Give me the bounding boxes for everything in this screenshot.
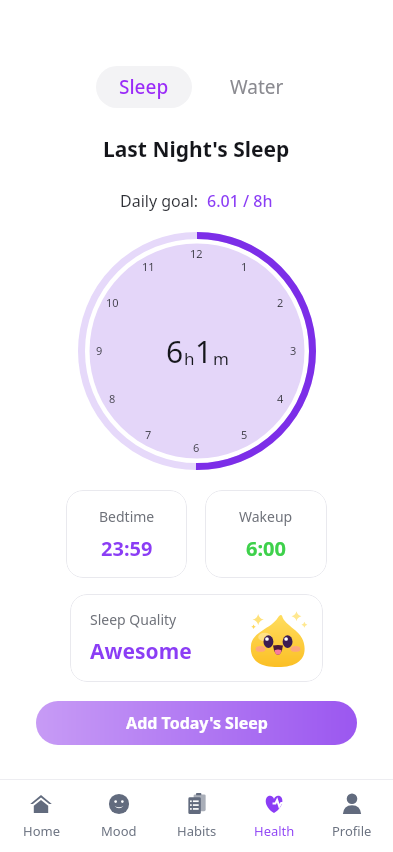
button[interactable]: Add Today's Sleep — [36, 701, 357, 745]
staticText: 8 — [109, 391, 116, 406]
staticText: Home — [23, 822, 60, 840]
staticText: 6 — [166, 331, 184, 372]
staticText: 1 — [241, 259, 248, 274]
staticText: 11 — [142, 259, 155, 274]
staticText: 6:00 — [246, 535, 286, 562]
button[interactable]: Sleep Quality — [70, 594, 323, 682]
staticText: Sleep — [119, 74, 169, 100]
button[interactable]: Health — [237, 780, 311, 852]
staticText: 4 — [277, 391, 284, 406]
staticText: Profile — [332, 822, 372, 840]
staticText: Add Today's Sleep — [126, 712, 268, 734]
button[interactable]: Mood — [82, 780, 156, 852]
staticText: 12 — [190, 246, 203, 261]
staticText: Health — [254, 822, 295, 840]
staticText: Habits — [177, 822, 217, 840]
staticText: 6.01 / 8h — [207, 190, 273, 212]
staticText: 7 — [145, 427, 152, 442]
staticText: Mood — [101, 822, 137, 840]
staticText: Awesome — [90, 637, 192, 666]
staticText: Sleep Quality — [90, 610, 177, 629]
button[interactable]: Wakeup — [205, 490, 327, 578]
staticText: 6 — [193, 440, 200, 455]
staticText: h — [184, 347, 195, 370]
button[interactable]: Home — [4, 780, 78, 852]
staticText: 2 — [277, 295, 284, 310]
staticText: Last Night's Sleep — [103, 135, 290, 164]
staticText: Wakeup — [239, 507, 293, 526]
staticText: Water — [230, 74, 284, 100]
button[interactable]: Bedtime — [66, 490, 187, 578]
staticText: Daily goal: — [120, 190, 207, 212]
staticText: Bedtime — [99, 507, 155, 526]
staticText: 10 — [106, 295, 119, 310]
staticText: 3 — [290, 343, 297, 358]
button[interactable]: Sleep — [96, 66, 192, 108]
staticText: 1 — [195, 331, 213, 372]
button[interactable]: Water — [216, 66, 298, 108]
staticText: 5 — [241, 427, 248, 442]
staticText: m — [213, 347, 229, 370]
staticText: 23:59 — [101, 535, 153, 562]
button[interactable]: Habits — [160, 780, 234, 852]
button[interactable]: Profile — [315, 780, 389, 852]
staticText: 9 — [96, 343, 103, 358]
